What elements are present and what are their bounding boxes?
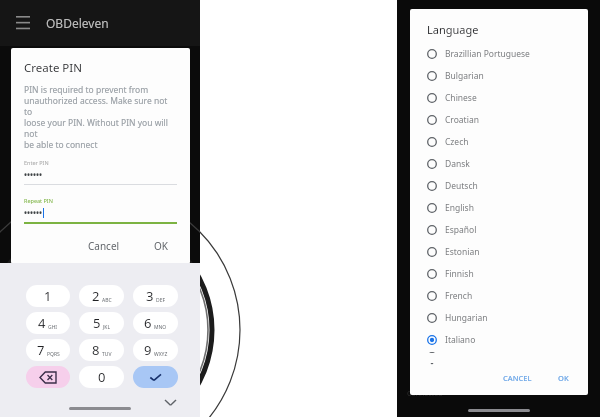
staticText: Czech [445,136,469,148]
button[interactable]: 3 [133,285,178,307]
staticText: DEF [156,297,166,304]
button[interactable]: Deutsch [410,175,588,197]
staticText: Español [445,224,477,236]
staticText: 1 [44,287,52,305]
staticText: French [445,290,473,302]
button[interactable]: 8 [79,339,124,361]
button[interactable]: Finnish [410,263,588,285]
staticText: Deutsch [445,180,478,192]
staticText: ABC [102,297,112,304]
button[interactable]: 5 [79,312,124,334]
staticText: Connected [407,389,443,399]
staticText: 5 [93,314,101,332]
staticText: Cancel [88,239,120,253]
staticText: 7 [37,341,45,359]
staticText: Finnish [445,268,474,280]
button[interactable]: 7 [26,339,70,361]
staticText: Dansk [445,158,470,170]
button[interactable]: Japan [410,351,588,363]
button[interactable]: 6 [133,312,178,334]
staticText: Enter PIN [24,159,49,166]
button[interactable]: English [410,197,588,219]
staticText: 9 [144,341,152,359]
staticText: Create PIN [24,60,82,76]
staticText: 2 [92,287,100,305]
staticText: Estonian [445,246,480,258]
button[interactable]: Italiano [410,329,588,351]
button[interactable]: Croatian [410,109,588,131]
staticText: GHI [48,324,58,331]
staticText: •••••• [24,169,43,180]
button[interactable]: 2 [79,285,124,307]
staticText: 6 [144,314,152,332]
staticText: 0 [98,368,106,386]
staticText: Hungarian [445,312,488,324]
staticText: TUV [102,351,112,358]
staticText: Croatian [445,114,479,126]
button[interactable]: Hungarian [410,307,588,329]
button[interactable]: 9 [133,339,178,361]
button[interactable]: Estonian [410,241,588,263]
staticText: Bulgarian [445,70,484,82]
staticText: OBDeleven [46,15,109,31]
button[interactable]: Cancel [79,234,129,258]
button[interactable]: Brazillian Portuguese [410,43,588,65]
staticText: Repeat PIN [24,197,53,204]
staticText: PIN is required to prevent from unauthor… [24,84,177,150]
button[interactable]: Backspace [26,366,70,388]
button[interactable]: Chinese [410,87,588,109]
staticText: CANCEL [503,373,532,383]
staticText: Italiano [445,334,476,346]
button[interactable]: 1 [26,285,70,307]
staticText: •••••• [24,207,43,218]
staticText: OK [558,373,569,383]
staticText: Language [427,22,479,37]
staticText: 3 [146,287,154,305]
button[interactable]: 0 [79,366,124,388]
button[interactable]: OK [551,368,576,388]
button[interactable]: French [410,285,588,307]
button[interactable]: Hide keyboard [162,394,178,410]
staticText: WXYZ [154,351,168,358]
button[interactable]: OK [145,234,177,258]
staticText: Brazillian Portuguese [445,48,530,60]
staticText: JKL [103,324,111,331]
staticText: 8 [92,341,100,359]
staticText: English [445,202,474,214]
button[interactable]: Bulgarian [410,65,588,87]
button[interactable]: 4 [26,312,70,334]
staticText: MNO [154,324,167,331]
staticText: OK [154,239,168,253]
button[interactable]: Español [410,219,588,241]
staticText: PQRS [47,351,60,358]
button[interactable]: Dansk [410,153,588,175]
staticText: 4 [38,314,46,332]
button[interactable]: CANCEL [496,368,539,388]
button[interactable]: Confirm [133,366,178,388]
button[interactable]: Open navigation menu [10,10,36,36]
button[interactable]: Czech [410,131,588,153]
staticText: Chinese [445,92,477,104]
